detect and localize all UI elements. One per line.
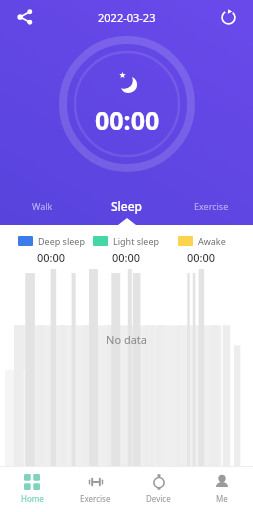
button[interactable]: Sleep: [85, 187, 169, 225]
staticText: Exercise: [80, 493, 111, 504]
staticText: 00:00: [112, 250, 141, 265]
staticText: Deep sleep: [38, 235, 85, 247]
staticText: Me: [216, 493, 228, 504]
staticText: 00:00: [187, 250, 216, 265]
button[interactable]: Home: [0, 466, 64, 512]
staticText: Device: [146, 493, 171, 504]
staticText: 2022-03-23: [98, 10, 156, 25]
staticText: Walk: [32, 200, 53, 212]
button[interactable]: Me: [190, 466, 253, 512]
button[interactable]: Exercise: [169, 187, 253, 225]
staticText: Light sleep: [113, 235, 160, 247]
button[interactable]: Light sleep: [89, 235, 164, 265]
button[interactable]: Walk: [0, 187, 85, 225]
button[interactable]: Share: [10, 2, 40, 32]
staticText: No data: [106, 332, 147, 347]
staticText: Exercise: [194, 200, 229, 212]
staticText: Awake: [198, 235, 226, 247]
button[interactable]: Device: [127, 466, 190, 512]
button[interactable]: Deep sleep: [14, 235, 89, 265]
button[interactable]: Refresh: [213, 2, 243, 32]
staticText: Sleep: [111, 198, 143, 214]
button[interactable]: Exercise: [64, 466, 127, 512]
staticText: 00:00: [95, 103, 160, 137]
button[interactable]: Awake: [164, 235, 239, 265]
staticText: Home: [21, 493, 44, 504]
staticText: 00:00: [37, 250, 66, 265]
